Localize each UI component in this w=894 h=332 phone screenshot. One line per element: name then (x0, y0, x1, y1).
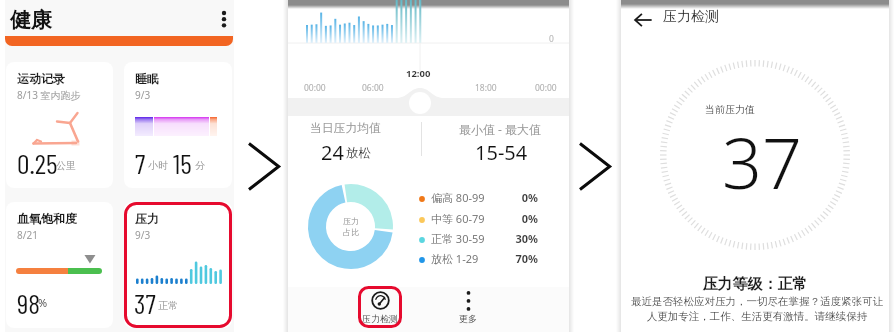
staticText: 8/13 室内跑步 (17, 88, 81, 102)
staticText: 00:00 (535, 82, 557, 94)
staticText: 15 (173, 146, 192, 180)
staticText: 中等 60-79 (431, 211, 485, 226)
staticText: 压力等级：正常 (621, 275, 889, 294)
button[interactable]: 睡眠 (124, 62, 232, 188)
staticText: 9/3 (135, 88, 151, 102)
staticText: 偏高 80-99 (431, 190, 485, 205)
staticText: 健康 (10, 7, 52, 33)
staticText: 睡眠 (135, 71, 159, 86)
staticText: 当日压力均值 (310, 121, 381, 136)
staticText: 7 (135, 146, 146, 180)
staticText: 8/21 (17, 228, 38, 242)
staticText: 30% (507, 231, 538, 246)
staticText: 正常 (158, 299, 178, 312)
staticText: 当前压力值 (705, 103, 755, 116)
button[interactable]: 运动记录 (6, 62, 113, 188)
staticText: 放松 1-29 (431, 251, 479, 266)
staticText: 正常 30-59 (431, 231, 485, 246)
staticText: 血氧饱和度 (17, 211, 77, 226)
staticText: % (38, 295, 48, 310)
staticText: 37 (722, 114, 802, 209)
staticText: 0% (507, 190, 538, 205)
staticText: 最小值 - 最大值 (459, 121, 542, 137)
staticText: 小时 (148, 159, 168, 172)
staticText: 占比 (343, 227, 359, 237)
staticText: 0 (549, 33, 554, 45)
staticText: 06:00 (362, 82, 384, 94)
staticText: 压力检测 (362, 313, 398, 324)
staticText: 压力 (343, 216, 359, 226)
button[interactable]: 压力检测 (358, 288, 402, 330)
staticText: 最近是否轻松应对压力，一切尽在掌握？适度紧张可让人更加专注，工作、生活更有激情。… (630, 295, 884, 323)
staticText: 压力检测 (663, 8, 719, 26)
staticText: 公里 (56, 159, 76, 172)
staticText: 放松 (346, 145, 371, 161)
button[interactable]: More options (211, 5, 237, 31)
button[interactable]: Back (630, 7, 656, 33)
staticText: 0% (507, 211, 538, 226)
staticText: 12:00 (406, 67, 431, 80)
button[interactable]: 更多 (446, 288, 490, 330)
button[interactable]: 血氧饱和度 (6, 202, 113, 328)
staticText: 压力 (135, 211, 159, 226)
staticText: 70% (507, 251, 538, 266)
staticText: 00:00 (304, 82, 326, 94)
staticText: 0.25 (17, 146, 58, 180)
button[interactable]: 压力 (124, 202, 232, 328)
staticText: 37 (134, 286, 156, 320)
staticText: 98 (17, 286, 41, 320)
staticText: 15-54 (475, 139, 528, 166)
staticText: 更多 (459, 313, 477, 324)
staticText: 24 (321, 139, 344, 166)
staticText: 9/3 (135, 228, 151, 242)
staticText: 18:00 (475, 82, 497, 94)
staticText: 分 (195, 159, 205, 172)
staticText: 运动记录 (17, 71, 65, 86)
